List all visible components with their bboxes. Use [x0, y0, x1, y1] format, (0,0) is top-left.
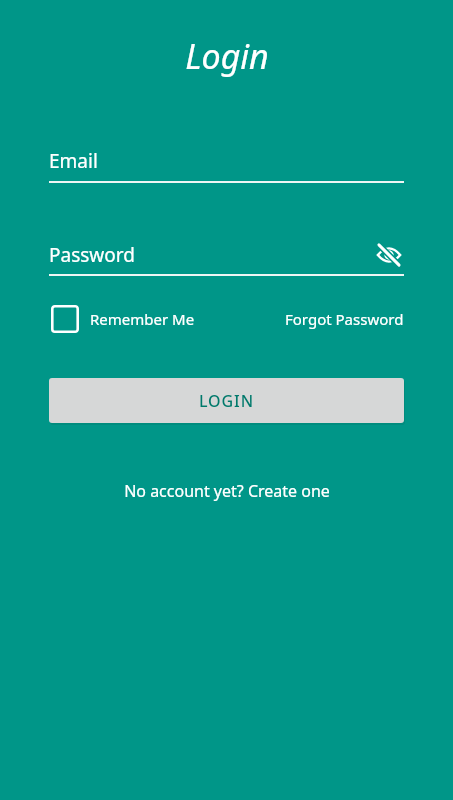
- button[interactable]: LOGIN: [49, 378, 404, 423]
- button[interactable]: Email: [49, 148, 404, 174]
- staticText: No account yet? Create one: [124, 480, 330, 502]
- staticText: Password: [49, 242, 135, 268]
- button[interactable]: Forgot Password: [285, 309, 404, 329]
- staticText: Forgot Password: [285, 309, 404, 329]
- button[interactable]: Password: [49, 242, 374, 268]
- staticText: Remember Me: [90, 309, 195, 329]
- button[interactable]: Remember Me: [51, 305, 195, 333]
- staticText: Email: [49, 148, 98, 174]
- staticText: LOGIN: [199, 390, 254, 412]
- button[interactable]: No account yet? Create one: [118, 478, 336, 504]
- button[interactable]: Show password: [374, 240, 404, 270]
- staticText: Login: [185, 33, 269, 79]
